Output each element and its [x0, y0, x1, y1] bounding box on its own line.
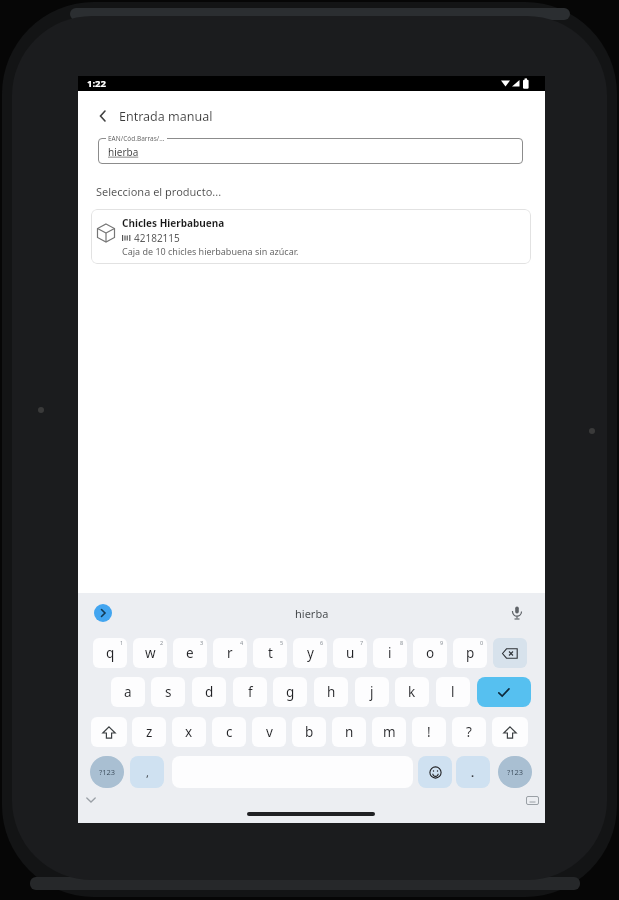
staticText: 9	[440, 639, 444, 646]
button[interactable]: c	[212, 717, 246, 747]
staticText: k	[408, 683, 416, 701]
button[interactable]	[492, 717, 528, 747]
staticText: v	[266, 723, 273, 741]
button[interactable]	[493, 638, 527, 668]
staticText: 7	[360, 639, 364, 646]
staticText: EAN/Cód.Barras/...	[108, 134, 165, 143]
staticText: 1:22	[87, 77, 106, 90]
button[interactable]: p	[453, 638, 487, 668]
staticText: .	[471, 765, 475, 780]
staticText: x	[185, 723, 193, 741]
button[interactable]: t	[253, 638, 287, 668]
button[interactable]: ?123	[90, 756, 124, 788]
staticText: n	[345, 723, 354, 741]
staticText: w	[145, 644, 156, 662]
staticText: ,	[146, 765, 149, 780]
staticText: t	[268, 644, 273, 662]
button[interactable]: b	[292, 717, 326, 747]
staticText: i	[388, 644, 392, 662]
staticText: 8	[400, 639, 404, 646]
staticText: 1	[120, 639, 124, 646]
staticText: Selecciona el producto...	[96, 184, 222, 199]
button[interactable]: j	[355, 677, 389, 707]
button[interactable]	[418, 756, 452, 788]
staticText: j	[370, 683, 374, 701]
button[interactable]: ?123	[498, 756, 532, 788]
button[interactable]: h	[314, 677, 348, 707]
button[interactable]: w	[133, 638, 167, 668]
staticText: f	[248, 683, 253, 701]
staticText: q	[106, 644, 115, 662]
staticText: a	[124, 683, 132, 701]
button[interactable]: f	[233, 677, 267, 707]
button[interactable]: n	[332, 717, 366, 747]
button[interactable]: m	[372, 717, 406, 747]
button[interactable]: ?	[452, 717, 486, 747]
staticText: 6	[320, 639, 324, 646]
button[interactable]: !	[412, 717, 446, 747]
button[interactable]: x	[172, 717, 206, 747]
staticText: u	[346, 644, 355, 662]
button[interactable]: o	[413, 638, 447, 668]
button[interactable]: v	[252, 717, 286, 747]
staticText: c	[226, 723, 233, 741]
button[interactable]	[94, 604, 112, 622]
staticText: Entrada manual	[119, 108, 213, 125]
button[interactable]	[98, 138, 523, 164]
staticText: 4	[240, 639, 244, 646]
button[interactable]: l	[436, 677, 470, 707]
staticText: 0	[480, 639, 484, 646]
button[interactable]	[477, 677, 531, 707]
staticText: y	[307, 644, 314, 662]
staticText: Caja de 10 chicles hierbabuena sin azúca…	[122, 245, 299, 257]
staticText: z	[146, 723, 153, 741]
staticText: g	[286, 683, 295, 701]
button[interactable]: i	[373, 638, 407, 668]
button[interactable]: q	[93, 638, 127, 668]
button[interactable]: k	[395, 677, 429, 707]
staticText: b	[305, 723, 314, 741]
button[interactable]: u	[333, 638, 367, 668]
staticText: 2	[160, 639, 164, 646]
staticText: l	[451, 683, 455, 701]
staticText: 5	[280, 639, 284, 646]
staticText: ?123	[507, 767, 524, 777]
button[interactable]: d	[192, 677, 226, 707]
button[interactable]: Chicles Hierbabuena	[91, 209, 531, 264]
button[interactable]	[91, 717, 127, 747]
staticText: m	[383, 723, 396, 741]
staticText: ?	[466, 723, 472, 741]
staticText: 42182115	[134, 231, 180, 245]
staticText: h	[327, 683, 336, 701]
staticText: o	[426, 644, 435, 662]
staticText: e	[186, 644, 194, 662]
button[interactable]: e	[173, 638, 207, 668]
staticText: ?123	[99, 767, 116, 777]
staticText: hierba	[295, 606, 329, 621]
button[interactable]: s	[151, 677, 185, 707]
staticText: hierba	[108, 145, 139, 159]
button[interactable]: .	[456, 756, 490, 788]
staticText: !	[427, 723, 431, 741]
staticText: p	[466, 644, 475, 662]
button[interactable]: a	[111, 677, 145, 707]
staticText: r	[227, 644, 233, 662]
button[interactable]	[92, 104, 114, 128]
button[interactable]: r	[213, 638, 247, 668]
button[interactable]: g	[273, 677, 307, 707]
staticText: Chicles Hierbabuena	[122, 216, 225, 230]
button[interactable]: ,	[130, 756, 164, 788]
staticText: d	[205, 683, 214, 701]
staticText: s	[165, 683, 172, 701]
staticText: 3	[200, 639, 204, 646]
button[interactable]: z	[132, 717, 166, 747]
button[interactable]: y	[293, 638, 327, 668]
